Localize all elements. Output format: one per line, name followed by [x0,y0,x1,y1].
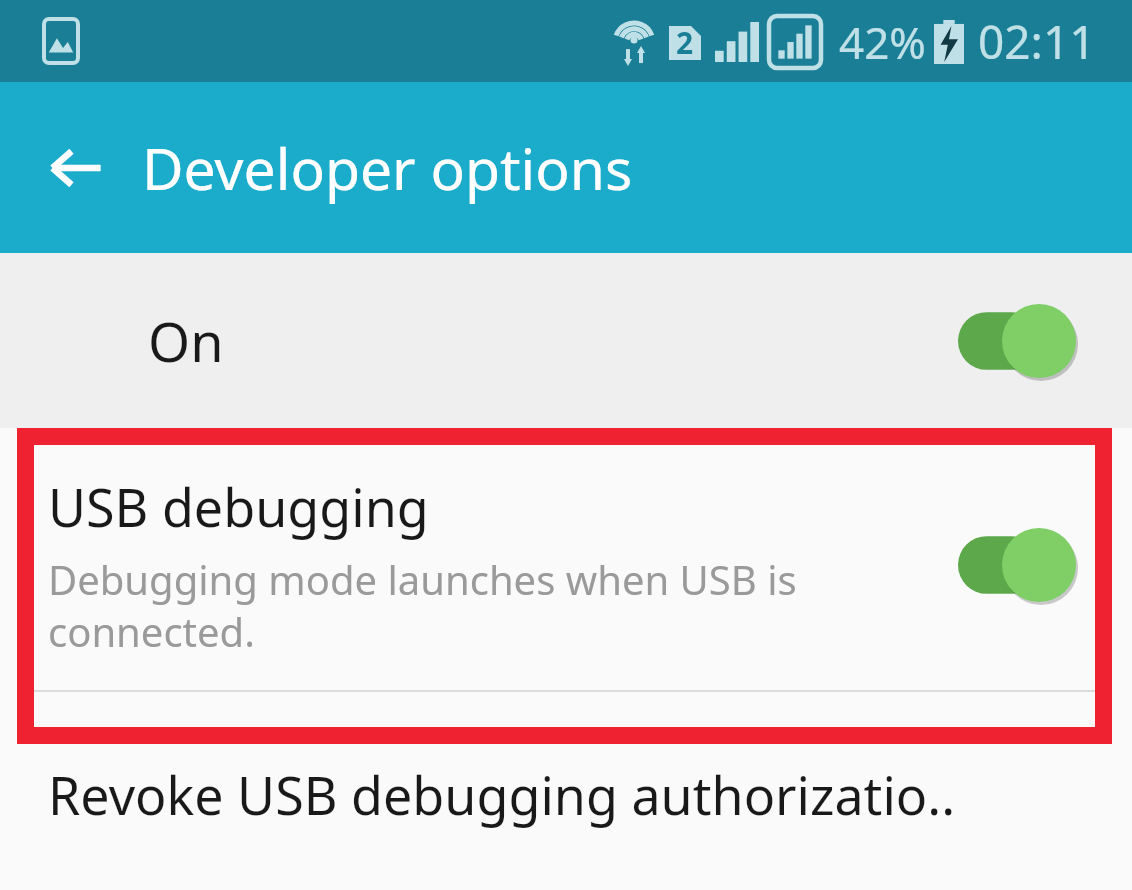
staticText: 42% [839,12,926,72]
button[interactable]: Back [36,128,116,208]
staticText: Developer options [142,129,633,207]
button[interactable]: USB debugging [0,428,1132,722]
staticText: 02:11 [978,10,1096,73]
staticText: On [148,304,224,378]
button[interactable]: Revoke USB debugging authorizatio.. [0,722,1132,867]
staticText: USB debugging [48,471,429,542]
staticText: 2 [676,22,694,63]
button[interactable]: On [0,253,1132,428]
staticText: Revoke USB debugging authorizatio.. [48,759,956,830]
staticText: Debugging mode launches when USB is conn… [48,552,934,659]
